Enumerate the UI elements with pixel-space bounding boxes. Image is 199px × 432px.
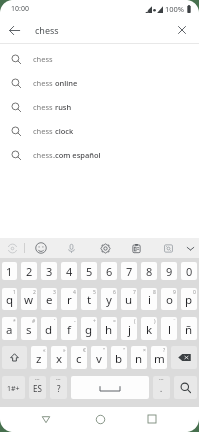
button[interactable]: 3 bbox=[41, 262, 57, 280]
button[interactable]: Stickers bbox=[159, 239, 177, 257]
button[interactable]: i bbox=[141, 288, 157, 310]
button[interactable]: chess bbox=[0, 47, 199, 71]
staticText: chess bbox=[33, 126, 55, 136]
staticText: ••• bbox=[56, 377, 61, 382]
staticText: r bbox=[67, 292, 72, 308]
button[interactable]: Hide keyboard bbox=[181, 239, 199, 257]
staticText: € bbox=[83, 347, 86, 354]
staticText: j bbox=[128, 322, 131, 338]
button[interactable]: Recent apps bbox=[142, 409, 162, 429]
staticText: g bbox=[85, 322, 93, 338]
button[interactable]: v bbox=[91, 346, 107, 369]
button[interactable]: chess bbox=[0, 119, 199, 143]
button[interactable]: Voice input bbox=[62, 239, 80, 257]
button[interactable]: Clipboard bbox=[127, 239, 145, 257]
button[interactable]: Emoji bbox=[32, 239, 50, 257]
button[interactable]: 0 bbox=[181, 262, 197, 280]
staticText: rush bbox=[55, 102, 72, 112]
button[interactable]: b bbox=[111, 346, 127, 369]
button[interactable]: chess bbox=[0, 143, 199, 167]
staticText: chess bbox=[33, 78, 55, 88]
staticText: 0 bbox=[186, 264, 193, 279]
button[interactable]: y bbox=[101, 288, 117, 310]
staticText: 5 bbox=[93, 289, 96, 296]
staticText: chess bbox=[35, 24, 59, 36]
staticText: ñ bbox=[185, 322, 193, 338]
staticText: 4 bbox=[66, 264, 73, 279]
button[interactable]: e bbox=[41, 288, 57, 310]
button[interactable]: n bbox=[131, 346, 147, 369]
staticText: chess bbox=[33, 102, 55, 112]
staticText: p bbox=[185, 292, 193, 308]
staticText: i bbox=[148, 292, 151, 308]
button[interactable]: j bbox=[121, 317, 137, 340]
button[interactable]: Search bbox=[174, 376, 197, 399]
button[interactable]: Space bbox=[71, 376, 149, 399]
staticText: 0 bbox=[193, 289, 196, 296]
button[interactable]: chess bbox=[0, 71, 199, 95]
button[interactable]: 9 bbox=[161, 262, 177, 280]
staticText: chess bbox=[33, 54, 53, 64]
staticText: 6 bbox=[113, 289, 116, 296]
button[interactable]: Clear search bbox=[171, 19, 193, 41]
button[interactable]: m bbox=[151, 346, 167, 369]
staticText: q bbox=[6, 292, 14, 308]
staticText: » bbox=[63, 347, 66, 354]
button[interactable]: 7 bbox=[121, 262, 137, 280]
button[interactable]: h bbox=[101, 317, 117, 340]
button[interactable]: Back bbox=[3, 19, 25, 41]
staticText: v bbox=[96, 351, 102, 367]
staticText: h bbox=[105, 322, 113, 338]
staticText: ″ bbox=[123, 347, 126, 354]
button[interactable]: a bbox=[2, 317, 17, 340]
button[interactable]: d bbox=[41, 317, 57, 340]
staticText: 9 bbox=[173, 289, 176, 296]
staticText: = bbox=[113, 318, 116, 325]
staticText: 9 bbox=[166, 264, 173, 279]
staticText: e bbox=[46, 292, 53, 308]
button[interactable]: 1#+ bbox=[2, 376, 25, 399]
staticText: a bbox=[6, 322, 13, 338]
button[interactable]: c bbox=[71, 346, 87, 369]
button[interactable]: 4 bbox=[61, 262, 77, 280]
button[interactable]: ñ bbox=[181, 317, 197, 340]
button[interactable]: Settings bbox=[96, 239, 114, 257]
button[interactable]: ES bbox=[29, 376, 46, 399]
button[interactable]: k bbox=[141, 317, 157, 340]
button[interactable]: f bbox=[61, 317, 77, 340]
staticText: f bbox=[67, 322, 71, 338]
button[interactable]: ? bbox=[50, 376, 67, 399]
button[interactable]: Google lens bbox=[3, 239, 21, 257]
button[interactable]: r bbox=[61, 288, 77, 310]
button[interactable]: s bbox=[21, 317, 37, 340]
staticText: ¨ bbox=[173, 318, 176, 325]
staticText: * bbox=[13, 318, 16, 325]
button[interactable]: Backspace bbox=[171, 346, 197, 369]
button[interactable]: p bbox=[181, 288, 197, 310]
button[interactable]: o bbox=[161, 288, 177, 310]
button[interactable]: 5 bbox=[81, 262, 97, 280]
staticText: # bbox=[32, 318, 36, 325]
button[interactable]: . bbox=[153, 376, 170, 399]
button[interactable]: 8 bbox=[141, 262, 157, 280]
button[interactable]: chess bbox=[0, 95, 199, 119]
button[interactable]: Home bbox=[90, 409, 110, 429]
button[interactable]: 2 bbox=[21, 262, 37, 280]
button[interactable]: u bbox=[121, 288, 137, 310]
button[interactable]: z bbox=[31, 346, 47, 369]
button[interactable]: Back bbox=[36, 409, 56, 429]
button[interactable]: q bbox=[2, 288, 17, 310]
staticText: chess bbox=[33, 150, 53, 160]
button[interactable]: x bbox=[51, 346, 67, 369]
button[interactable]: l bbox=[161, 317, 177, 340]
button[interactable]: g bbox=[81, 317, 97, 340]
staticText: clock bbox=[55, 126, 74, 136]
staticText: m bbox=[154, 351, 165, 367]
staticText: b bbox=[115, 351, 123, 367]
button[interactable]: 6 bbox=[101, 262, 117, 280]
button[interactable]: Shift bbox=[2, 346, 27, 369]
button[interactable]: w bbox=[21, 288, 37, 310]
staticText: o bbox=[166, 292, 173, 308]
button[interactable]: 1 bbox=[2, 262, 17, 280]
button[interactable]: t bbox=[81, 288, 97, 310]
